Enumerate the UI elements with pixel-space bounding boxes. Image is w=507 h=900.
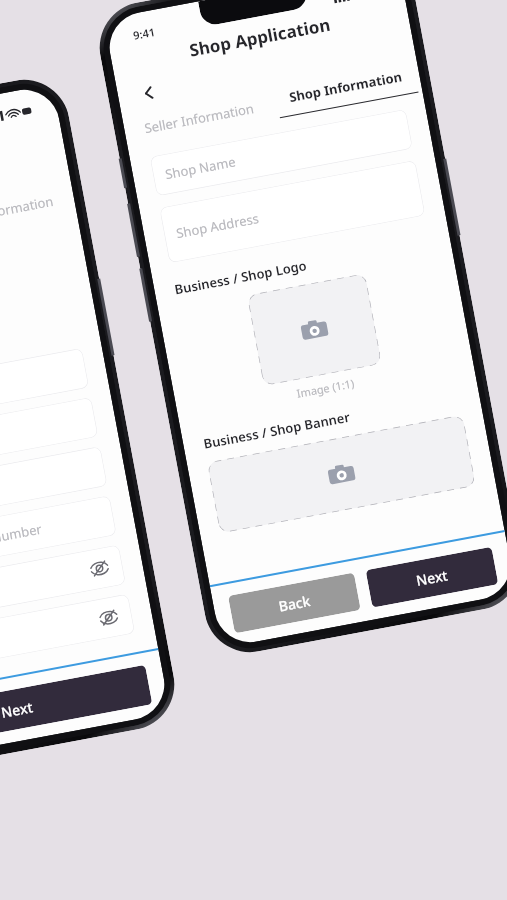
- button[interactable]: Password: [0, 545, 126, 632]
- button[interactable]: Shop Information: [0, 180, 77, 241]
- staticText: Back: [277, 591, 312, 616]
- button[interactable]: Show password: [87, 556, 112, 581]
- button[interactable]: Next: [0, 665, 152, 753]
- button[interactable]: Confirm Password: [0, 594, 135, 681]
- staticText: Phone Number: [0, 519, 44, 554]
- button[interactable]: Next: [366, 547, 498, 608]
- staticText: Shop Application: [110, 0, 409, 76]
- button[interactable]: Show password: [96, 605, 122, 630]
- button[interactable]: Phone Number: [0, 495, 117, 568]
- staticText: Shop Information: [288, 67, 404, 106]
- button[interactable]: Shop Information: [269, 60, 423, 121]
- button[interactable]: Shop Name: [150, 109, 413, 196]
- staticText: Shop Information: [0, 192, 55, 229]
- staticText: Business / Shop Logo: [173, 256, 308, 298]
- button[interactable]: Shop Address: [159, 160, 425, 263]
- staticText: Next: [415, 565, 449, 590]
- staticText: Seller Information: [143, 99, 255, 137]
- button[interactable]: Back: [228, 572, 361, 633]
- staticText: Shop Application: [0, 118, 63, 196]
- staticText: Image (1:1): [196, 357, 454, 419]
- button[interactable]: Email Address: [0, 446, 107, 533]
- staticText: Shop Name: [164, 152, 238, 183]
- button[interactable]: Upload image: [247, 273, 382, 386]
- button[interactable]: Seller Information: [122, 88, 275, 149]
- staticText: Business / Shop Banner: [202, 408, 352, 453]
- staticText: Next: [0, 697, 34, 722]
- staticText: Shop Address: [175, 209, 261, 242]
- button[interactable]: Upload image: [207, 415, 476, 533]
- staticText: 9:41: [132, 24, 156, 43]
- button[interactable]: Back: [134, 78, 164, 108]
